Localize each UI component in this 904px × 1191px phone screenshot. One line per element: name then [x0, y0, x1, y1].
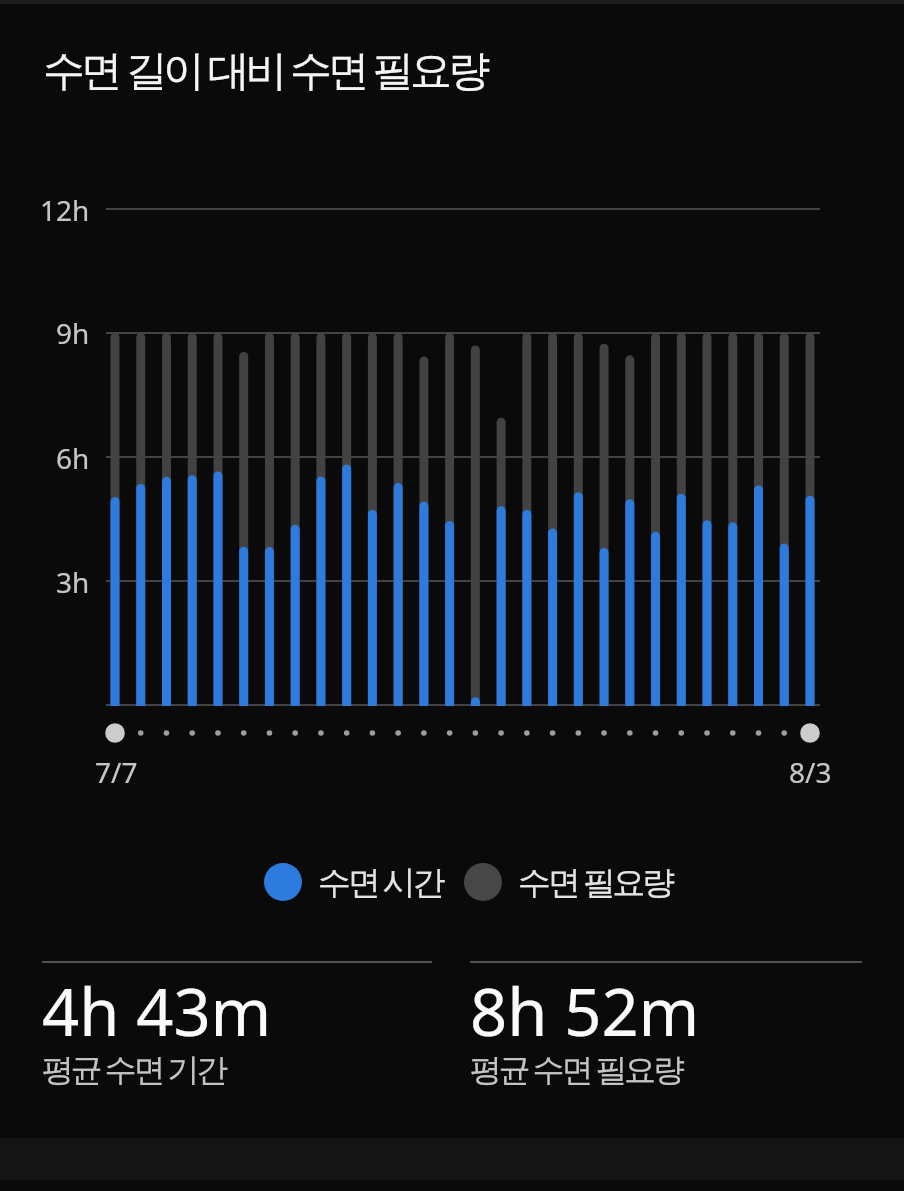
staticText: 평균 수면 기간 — [42, 1047, 226, 1091]
staticText: 수면 필요량 — [518, 859, 672, 904]
staticText: 9h — [56, 314, 90, 352]
staticText: 수면 시간 — [318, 859, 443, 904]
staticText: 12h — [40, 191, 90, 229]
staticText: 8h 52m — [470, 967, 700, 1056]
staticText: 8/3 — [789, 753, 832, 791]
staticText: 수면 길이 대비 수면 필요량 — [43, 40, 486, 97]
staticText: 평균 수면 필요량 — [470, 1047, 682, 1091]
staticText: 7/7 — [95, 753, 138, 791]
staticText: 6h — [56, 439, 90, 477]
staticText: 4h 43m — [42, 967, 272, 1056]
staticText: 3h — [56, 563, 90, 601]
button[interactable]: 수면 필요량 — [464, 859, 672, 904]
button[interactable]: 수면 시간 — [264, 859, 443, 904]
